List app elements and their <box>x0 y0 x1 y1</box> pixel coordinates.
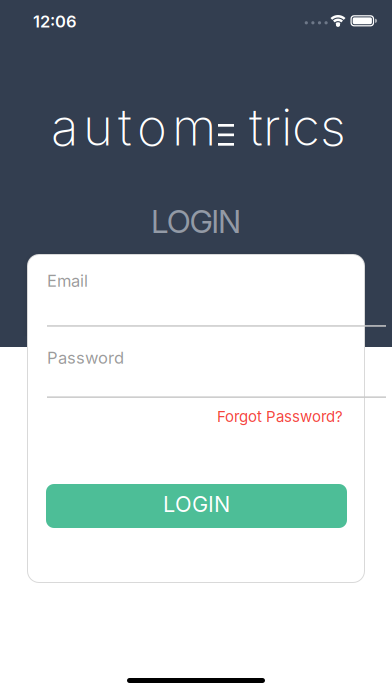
staticText: 12:06 <box>33 11 77 31</box>
staticText: Forgot Password? <box>217 407 343 426</box>
button[interactable]: Email <box>47 266 386 327</box>
staticText: trics <box>249 96 346 158</box>
staticText: Password <box>47 348 124 368</box>
staticText: a u t o m <box>51 96 216 158</box>
button[interactable]: Password <box>47 341 386 402</box>
staticText: LOGIN <box>151 202 241 241</box>
staticText: LOGIN <box>163 491 230 517</box>
staticText: Email <box>47 271 88 291</box>
button[interactable]: LOGIN <box>46 484 347 528</box>
button[interactable]: Forgot Password? <box>217 407 343 426</box>
